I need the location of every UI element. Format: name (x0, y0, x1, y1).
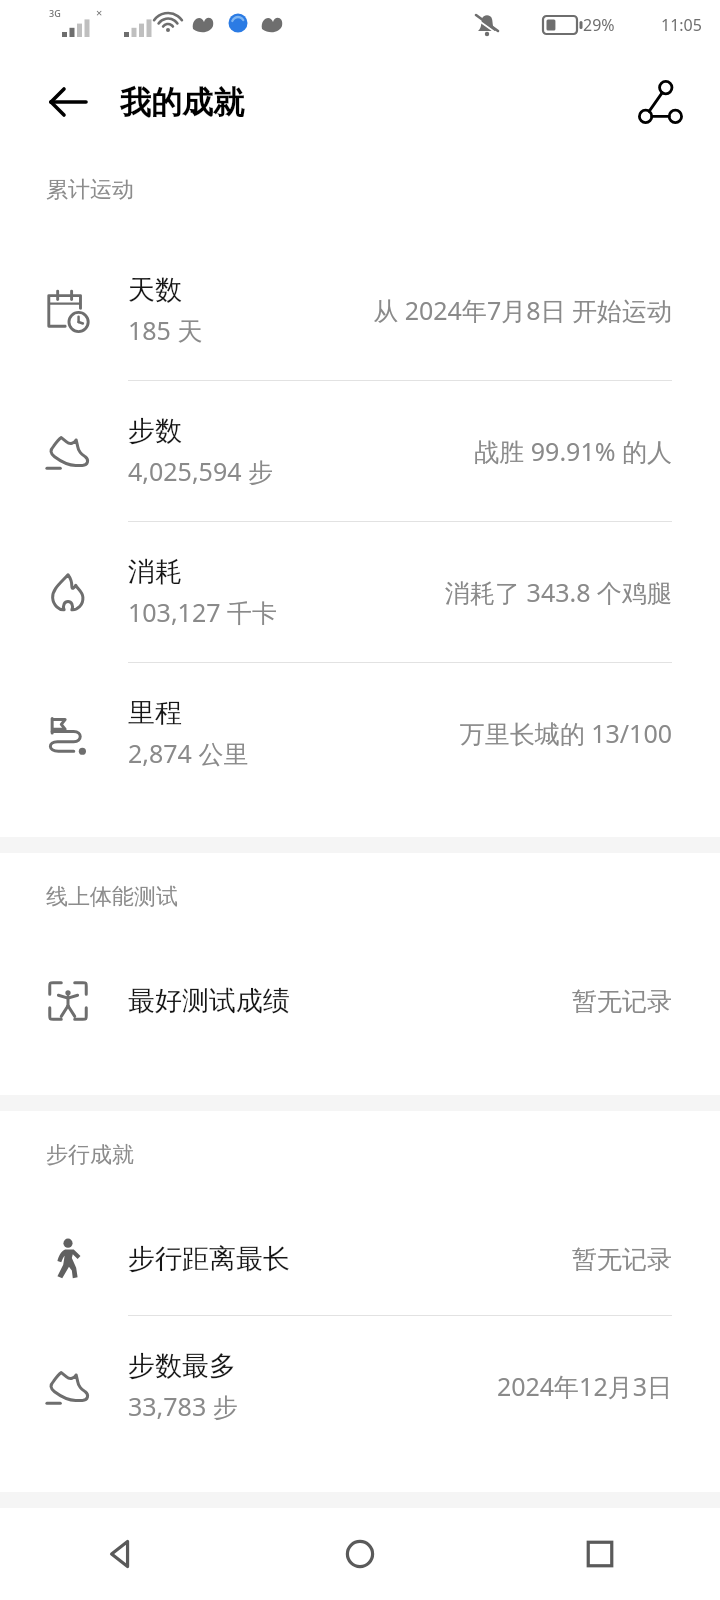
staticText: 消耗 (128, 555, 182, 589)
staticText: 我的成就 (120, 83, 244, 122)
staticText: 步行成就 (46, 1141, 134, 1169)
staticText: 从 2024年7月8日 开始运动 (373, 293, 672, 327)
staticText: 万里长城的 13/100 (459, 716, 672, 750)
button[interactable]: Recents (480, 1508, 720, 1600)
staticText: 185 天 (128, 313, 203, 347)
staticText: 最好测试成绩 (128, 984, 572, 1018)
button[interactable]: Home (240, 1508, 480, 1600)
button[interactable]: 步数 (0, 381, 720, 521)
staticText: 29% (583, 14, 615, 36)
staticText: 步数最多 (128, 1349, 236, 1383)
staticText: 11:05 (661, 14, 702, 36)
staticText: 2024年12月3日 (496, 1369, 672, 1403)
staticText: 4,025,594 步 (128, 454, 274, 488)
staticText: 里程 (128, 696, 182, 730)
staticText: × (96, 5, 103, 20)
button[interactable]: 里程 (0, 663, 720, 803)
button[interactable]: 步行距离最长 (0, 1203, 720, 1315)
staticText: 累计运动 (46, 176, 134, 204)
button[interactable]: 步数最多 (0, 1316, 720, 1456)
button[interactable]: 最好测试成绩 (0, 945, 720, 1057)
staticText: 天数 (128, 273, 182, 307)
staticText: 战胜 99.91% 的人 (474, 434, 672, 468)
staticText: 消耗了 343.8 个鸡腿 (445, 575, 672, 609)
staticText: 2,874 公里 (128, 736, 249, 770)
staticText: 3G (49, 7, 61, 19)
staticText: 步行距离最长 (128, 1242, 572, 1276)
button[interactable]: 消耗 (0, 522, 720, 662)
button[interactable]: Back (0, 1508, 240, 1600)
staticText: 步数 (128, 414, 182, 448)
button[interactable]: Share (624, 66, 696, 138)
button[interactable]: Back (32, 66, 104, 138)
staticText: 33,783 步 (128, 1389, 238, 1423)
staticText: 暂无记录 (572, 986, 672, 1017)
button[interactable]: 天数 (0, 240, 720, 380)
staticText: 线上体能测试 (46, 883, 178, 911)
staticText: 暂无记录 (572, 1244, 672, 1275)
staticText: 103,127 千卡 (128, 595, 278, 629)
